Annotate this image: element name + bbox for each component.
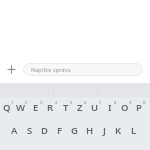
staticText: 5 [70,100,73,106]
staticText: 2 [25,100,28,106]
staticText: 0 [143,100,146,106]
staticText: 7 [99,100,102,106]
staticText: F [57,124,63,137]
button[interactable]: O [117,97,132,120]
staticText: 3 [40,100,43,106]
staticText: 4 [55,100,58,106]
button[interactable]: R [43,97,58,120]
button[interactable]: S [22,120,37,143]
button[interactable]: P [131,97,146,120]
button[interactable]: Q [0,97,14,120]
staticText: T [63,101,69,114]
staticText: L [131,124,137,137]
button[interactable]: W [13,97,28,120]
button[interactable]: L [126,120,141,143]
button[interactable]: U [87,97,102,120]
staticText: P [136,101,142,114]
staticText: G [71,124,78,137]
staticText: 1 [11,100,14,106]
button[interactable]: A [7,120,22,143]
button[interactable]: H [82,120,97,143]
button[interactable]: J [97,120,112,143]
staticText: W [16,101,26,114]
button[interactable]: Napište zprávu [23,63,143,76]
staticText: D [41,124,48,137]
button[interactable]: K [111,120,126,143]
staticText: Napište zprávu [31,66,71,73]
staticText: U [91,101,99,114]
staticText: K [115,124,122,137]
staticText: A [11,124,18,137]
button[interactable]: Z [72,97,87,120]
staticText: R [47,101,54,114]
staticText: S [27,124,33,137]
staticText: E [33,101,39,114]
staticText: 6 [84,100,87,106]
button[interactable]: E [28,97,43,120]
staticText: J [103,124,106,137]
button[interactable]: F [52,120,67,143]
button[interactable]: T [58,97,73,120]
staticText: 9 [129,100,132,106]
staticText: Q [3,101,11,114]
button[interactable]: I [102,97,117,120]
staticText: 8 [114,100,117,106]
staticText: H [86,124,94,137]
button[interactable]: G [67,120,82,143]
staticText: I [108,101,112,114]
button[interactable]: Add attachment [0,63,23,76]
staticText: O [121,101,129,114]
button[interactable]: D [37,120,52,143]
staticText: Z [77,101,83,114]
